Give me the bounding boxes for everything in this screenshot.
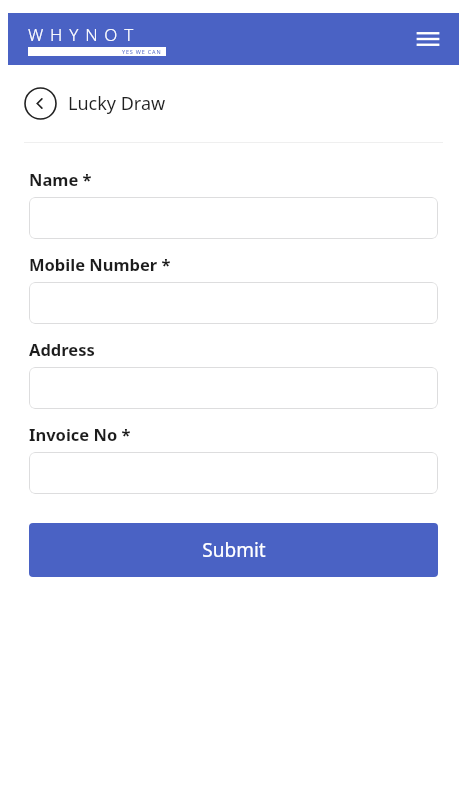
staticText: Mobile Number * — [29, 253, 171, 275]
button[interactable] — [29, 452, 438, 494]
staticText: Name * — [29, 168, 92, 190]
staticText: Submit — [202, 537, 266, 563]
button[interactable] — [29, 367, 438, 409]
staticText: Invoice No * — [29, 423, 131, 445]
button[interactable] — [29, 197, 438, 239]
button[interactable]: W H Y N O T — [28, 23, 166, 56]
staticText: YES WE CAN — [122, 48, 162, 55]
staticText: Address — [29, 338, 95, 360]
button[interactable]: Back — [24, 87, 166, 120]
button[interactable]: Menu — [411, 22, 445, 56]
staticText: W H Y N O T — [28, 23, 135, 46]
button[interactable]: Submit — [29, 523, 438, 577]
other: Back — [24, 87, 57, 120]
staticText: Lucky Draw — [68, 91, 166, 116]
button[interactable] — [29, 282, 438, 324]
